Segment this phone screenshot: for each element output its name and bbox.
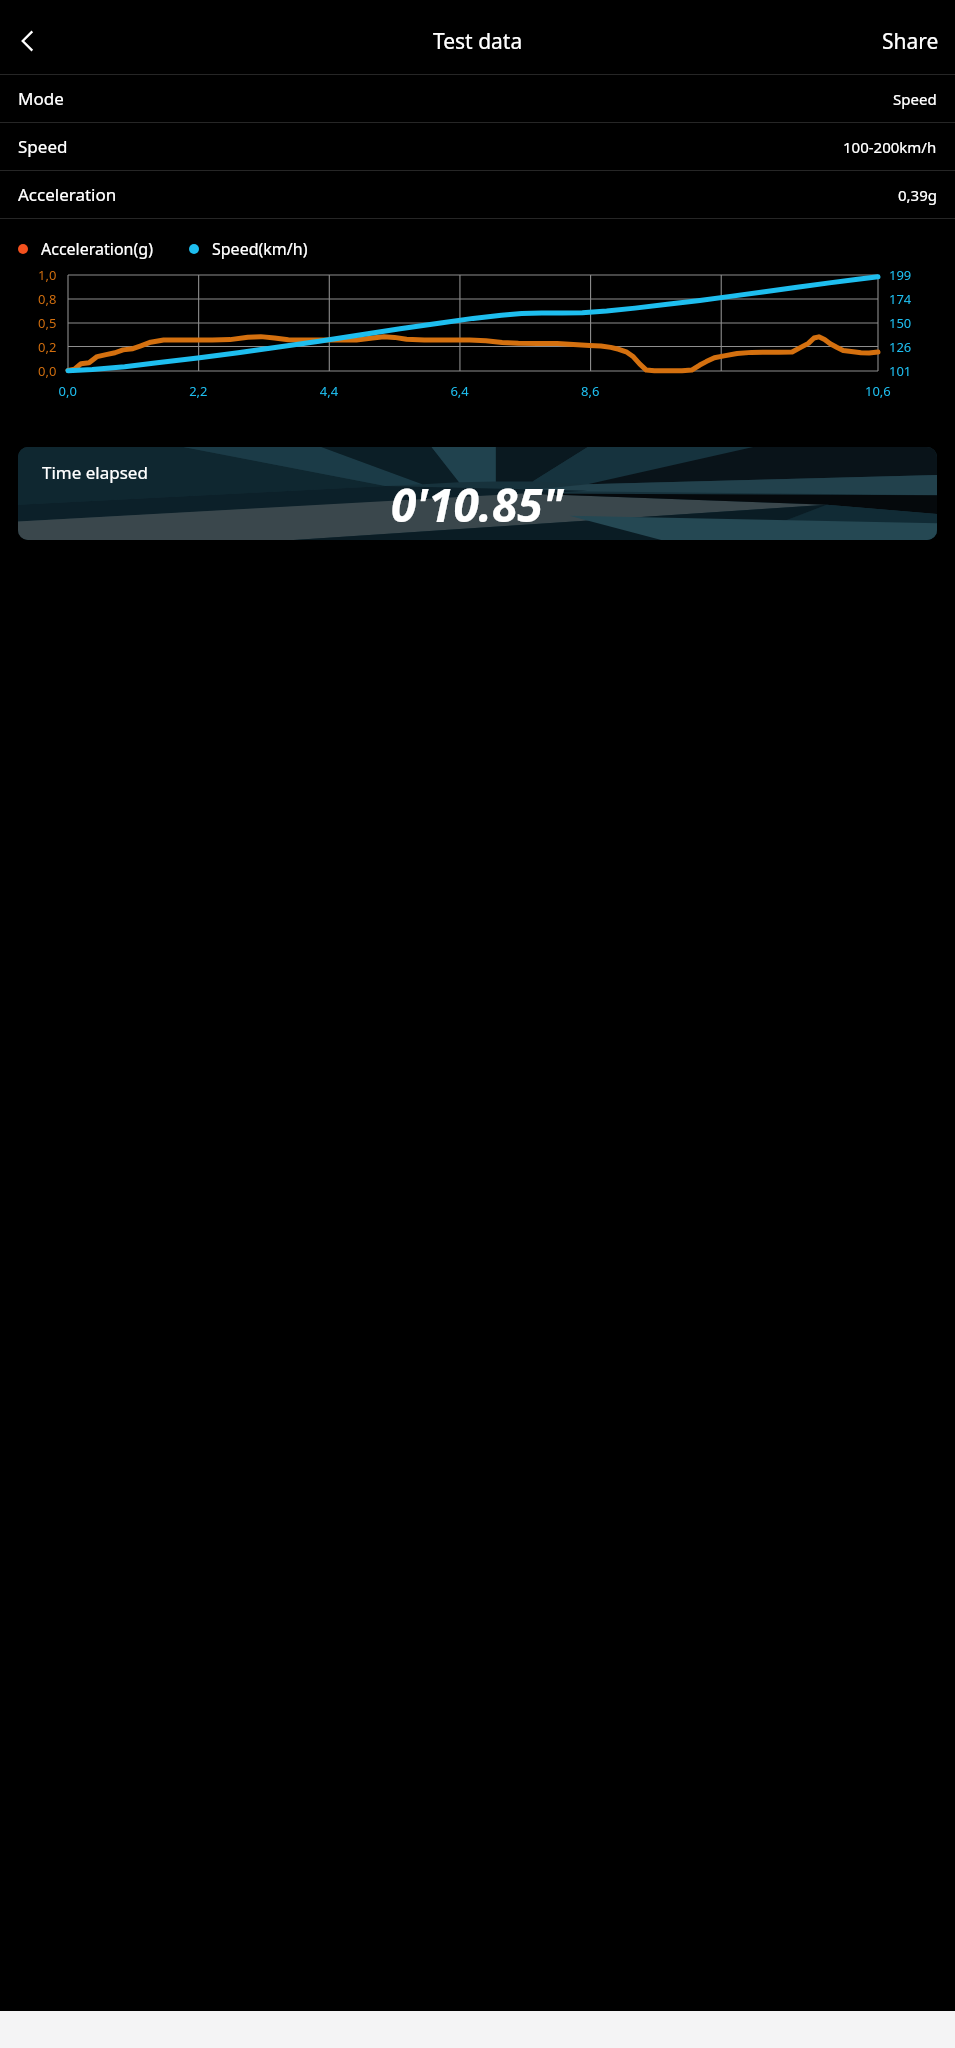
- button[interactable]: Speed: [0, 123, 955, 170]
- button[interactable]: Back: [5, 18, 51, 64]
- staticText: 0'10.85": [391, 473, 564, 536]
- button[interactable]: Acceleration: [0, 171, 955, 218]
- button[interactable]: Time elapsed: [18, 447, 937, 540]
- staticText: Acceleration: [18, 183, 117, 206]
- staticText: Time elapsed: [42, 461, 148, 484]
- staticText: Test data: [433, 27, 523, 56]
- staticText: 100-200km/h: [843, 137, 937, 157]
- staticText: Mode: [18, 87, 64, 110]
- staticText: 0,39g: [898, 185, 937, 205]
- button[interactable]: Share: [874, 19, 947, 64]
- staticText: Share: [882, 27, 939, 56]
- button[interactable]: Mode: [0, 75, 955, 122]
- staticText: Speed: [18, 135, 68, 158]
- staticText: Speed(km/h): [212, 238, 308, 260]
- staticText: Speed: [893, 89, 937, 109]
- staticText: Acceleration(g): [41, 238, 153, 260]
